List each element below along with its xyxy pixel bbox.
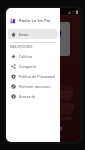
- staticText: Remover anuncios: [19, 84, 51, 89]
- staticText: Calificar: [19, 54, 33, 59]
- button[interactable]: Radio La Sin Par: [6, 15, 60, 27]
- button[interactable]: Acerca de: [8, 91, 58, 101]
- button[interactable]: Calificar: [8, 51, 58, 61]
- staticText: Inicio: [19, 32, 29, 37]
- staticText: Radio La Sin Par: [19, 18, 52, 24]
- button[interactable]: Remover anuncios: [8, 81, 58, 91]
- button[interactable]: Compartir: [8, 61, 58, 71]
- button[interactable]: Inicio: [8, 29, 58, 39]
- button[interactable]: Política de Privacidad: [8, 71, 58, 81]
- staticText: Acerca de: [19, 94, 36, 99]
- staticText: Compartir: [19, 64, 37, 69]
- staticText: MÁS OPCIONES: [10, 45, 33, 49]
- staticText: Política de Privacidad: [19, 74, 55, 79]
